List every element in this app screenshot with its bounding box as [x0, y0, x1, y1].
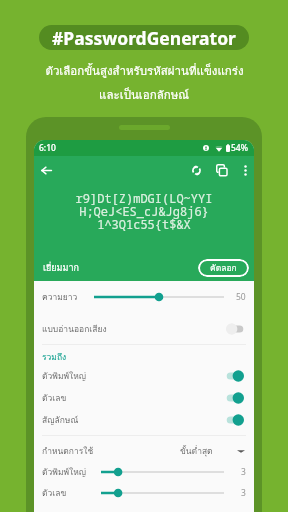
staticText: 54% [231, 142, 248, 154]
button[interactable]: ตัวเลข [34, 388, 254, 408]
button[interactable]: ตัวพิมพ์ใหญ่ [34, 462, 254, 482]
staticText: ตัวพิมพ์ใหญ่ [42, 465, 87, 479]
staticText: ตัวพิมพ์ใหญ่ [42, 369, 87, 383]
staticText: 6:10 [39, 142, 56, 154]
staticText: ตัวเลข [42, 391, 67, 405]
staticText: ความยาว [42, 290, 78, 304]
button[interactable]: ความยาว [34, 287, 254, 307]
button[interactable]: More options [234, 159, 254, 181]
button[interactable]: Refresh [185, 159, 207, 181]
staticText: กำหนดการใช้ [42, 444, 94, 458]
button[interactable]: ตัวพิมพ์ใหญ่ [34, 366, 254, 386]
staticText: คัดลอก [210, 261, 237, 275]
button[interactable]: Copy [211, 159, 233, 181]
button[interactable]: คัดลอก [198, 259, 249, 277]
staticText: 50 [236, 291, 246, 303]
staticText: รวมถึง [42, 350, 67, 364]
staticText: ตัวเลข [42, 486, 67, 500]
staticText: 3 [241, 466, 246, 478]
button[interactable]: Back [35, 159, 57, 181]
staticText: แบบอ่านออกเสียง [42, 322, 107, 336]
staticText: สัญลักษณ์ [42, 413, 79, 427]
button[interactable]: สัญลักษณ์ [34, 410, 254, 430]
staticText: 3 [241, 487, 246, 499]
staticText: #PasswordGenerator [52, 26, 236, 50]
button[interactable]: ตัวเลข [34, 483, 254, 503]
staticText: และเป็นเอกลักษณ์ [99, 86, 189, 104]
staticText: ตัวเลือกขั้นสูงสำหรับรหัสผ่านที่แข็งแกร่… [45, 62, 244, 80]
staticText: เยี่ยมมาก [43, 261, 79, 275]
button[interactable]: แบบอ่านออกเสียง [34, 319, 254, 339]
staticText: r9]Dt[Z)mDGI(LQ~YYI H;QeJ<ES_cJ&Jg8j6} 1… [34, 190, 254, 233]
button[interactable]: #PasswordGenerator [39, 25, 249, 50]
staticText: ขั้นต่ำสุด [180, 444, 213, 458]
button[interactable]: กำหนดการใช้ [34, 441, 254, 461]
